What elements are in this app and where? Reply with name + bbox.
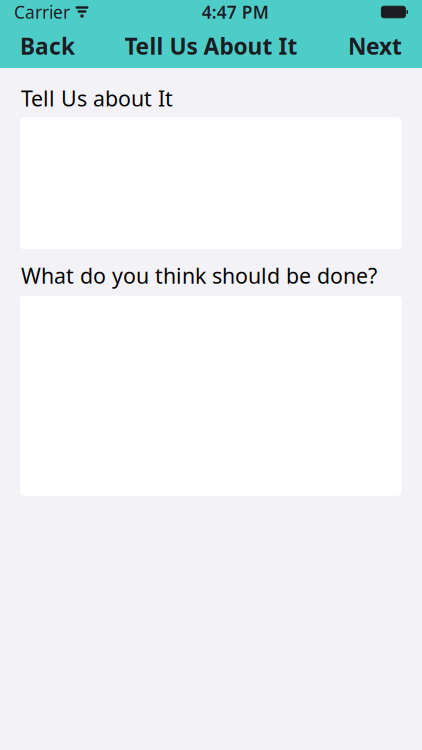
staticText: Tell Us About It — [124, 31, 297, 61]
button[interactable] — [0, 117, 422, 249]
staticText: Next — [348, 31, 402, 61]
staticText: Carrier — [14, 0, 70, 23]
button[interactable] — [0, 296, 422, 496]
button[interactable]: Next — [340, 25, 410, 67]
staticText: 4:47 PM — [202, 0, 269, 23]
staticText: What do you think should be done? — [21, 261, 377, 290]
staticText: Back — [20, 31, 75, 61]
staticText: Tell Us about It — [21, 84, 173, 112]
button[interactable]: Back — [12, 25, 83, 67]
